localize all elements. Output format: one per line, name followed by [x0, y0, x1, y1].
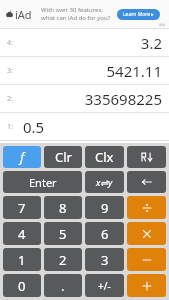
- button[interactable]: x⇌y: [85, 171, 124, 193]
- staticText: Clr: [55, 148, 72, 166]
- button[interactable]: 1:: [0, 113, 169, 140]
- staticText: .: [61, 277, 65, 295]
- staticText: 6: [101, 225, 109, 243]
- staticText: 3.2: [140, 33, 162, 53]
- button[interactable]: f: [3, 146, 41, 168]
- button[interactable]: 0: [3, 274, 41, 297]
- staticText: 0: [18, 277, 26, 295]
- button[interactable]: 1: [3, 248, 41, 271]
- button[interactable]: Enter: [3, 171, 82, 193]
- staticText: Clx: [95, 148, 114, 166]
- staticText: 3: [101, 251, 109, 269]
- button[interactable]: Plus: [127, 274, 166, 297]
- staticText: iAd: [15, 7, 32, 22]
- staticText: 5: [59, 225, 67, 243]
- staticText: 335698225: [84, 89, 162, 109]
- button[interactable]: 5: [44, 222, 82, 245]
- button[interactable]: 6: [85, 222, 124, 245]
- staticText: 4:: [7, 38, 13, 48]
- staticText: 1:: [7, 122, 13, 132]
- staticText: 2:: [7, 94, 13, 104]
- button[interactable]: 3: [85, 248, 124, 271]
- staticText: f: [20, 148, 25, 166]
- staticText: 5421.11: [106, 61, 162, 81]
- staticText: what can iAd do for you?: [41, 14, 111, 22]
- button[interactable]: iAd: [0, 0, 169, 28]
- button[interactable]: 2:: [0, 85, 169, 112]
- staticText: 2: [59, 251, 67, 269]
- staticText: iAd: [159, 22, 166, 27]
- staticText: 9: [101, 199, 109, 217]
- staticText: 3:: [7, 66, 13, 76]
- staticText: 0.5: [23, 117, 45, 137]
- button[interactable]: 3:: [0, 57, 169, 84]
- staticText: 7: [18, 199, 26, 217]
- button[interactable]: .: [44, 274, 82, 297]
- button[interactable]: Clx: [85, 146, 124, 168]
- button[interactable]: Divide: [127, 196, 166, 219]
- staticText: +/-: [98, 279, 111, 293]
- button[interactable]: Backspace: [127, 171, 166, 193]
- button[interactable]: 2: [44, 248, 82, 271]
- button[interactable]: Clr: [44, 146, 82, 168]
- staticText: 8: [59, 199, 67, 217]
- staticText: 1: [18, 251, 26, 269]
- button[interactable]: Learn More ▸: [117, 9, 160, 20]
- button[interactable]: 4:: [0, 29, 169, 56]
- staticText: Learn More ▸: [123, 11, 154, 18]
- button[interactable]: Minus: [127, 248, 166, 271]
- button[interactable]: Multiply: [127, 222, 166, 245]
- button[interactable]: 9: [85, 196, 124, 219]
- staticText: With over 30 features,: [41, 6, 103, 14]
- button[interactable]: +/-: [85, 274, 124, 297]
- button[interactable]: 7: [3, 196, 41, 219]
- button[interactable]: 4: [3, 222, 41, 245]
- button[interactable]: 8: [44, 196, 82, 219]
- staticText: 4: [18, 225, 26, 243]
- button[interactable]: Roll down: [127, 146, 166, 168]
- staticText: Enter: [29, 175, 57, 190]
- staticText: x⇌y: [96, 176, 113, 188]
